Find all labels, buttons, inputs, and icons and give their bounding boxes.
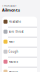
button[interactable]: Fever: [2, 37, 37, 47]
button[interactable]: Headache: [2, 17, 37, 27]
button[interactable]: Fatigue: [2, 67, 37, 72]
staticText: Cough: [8, 50, 18, 53]
staticText: Fatigue: [8, 70, 18, 72]
button[interactable]: Nausea: [2, 57, 37, 67]
staticText: Headache: [8, 20, 21, 23]
staticText: Ailments: [2, 7, 20, 13]
staticText: Nausea: [8, 60, 17, 63]
button[interactable]: Sore throat: [2, 27, 37, 37]
button[interactable]: Cough: [2, 47, 37, 57]
staticText: Sore throat: [8, 30, 23, 33]
staticText: THURSDAY: [2, 4, 17, 7]
staticText: Fever: [8, 40, 14, 43]
